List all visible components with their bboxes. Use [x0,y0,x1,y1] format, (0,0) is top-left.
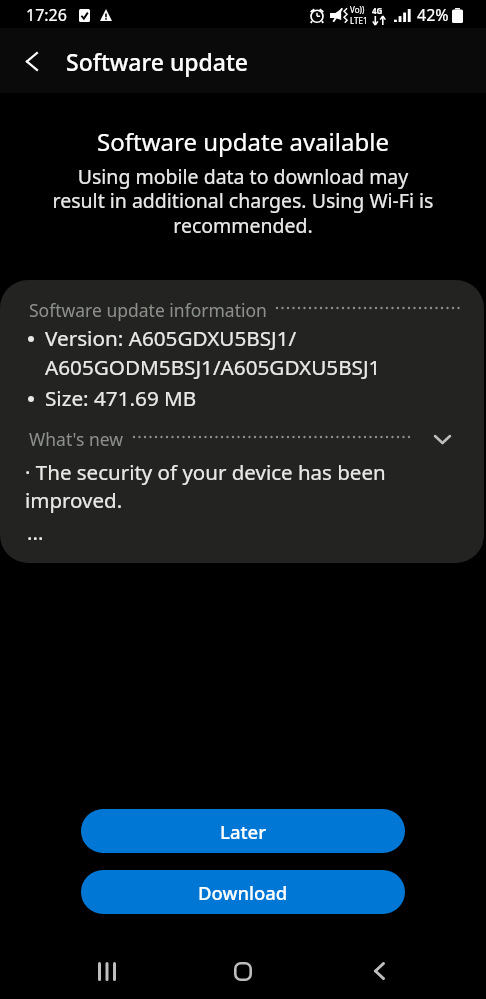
button[interactable]: Back [349,947,409,995]
staticText: Later [220,819,266,844]
staticText: Vo)) [350,4,365,15]
button[interactable]: Home [213,947,273,995]
staticText: Software update information [29,298,267,322]
staticText: 17:26 [26,4,67,26]
staticText: Version: A605GDXU5BSJ1/ A605GODM5BSJ1/A6… [45,324,381,381]
staticText: Download [198,880,288,905]
staticText: 4G [372,5,383,16]
button[interactable]: Download [81,870,405,914]
staticText: · The security of your device has been i… [25,458,386,514]
staticText: Size: 471.69 MB [45,384,197,412]
button[interactable]: Back [8,37,56,85]
button[interactable]: Expand [429,426,455,452]
staticText: Software update available [0,125,486,158]
staticText: ... [27,518,44,546]
staticText: 42% [417,4,449,26]
staticText: Using mobile data to download may result… [0,163,486,239]
staticText: LTE1 [350,15,368,26]
button[interactable]: Later [81,809,405,853]
button[interactable]: Recents [77,947,137,995]
staticText: Software update [66,46,248,77]
staticText: What's new [29,427,124,451]
button[interactable]: What's new [0,426,484,452]
